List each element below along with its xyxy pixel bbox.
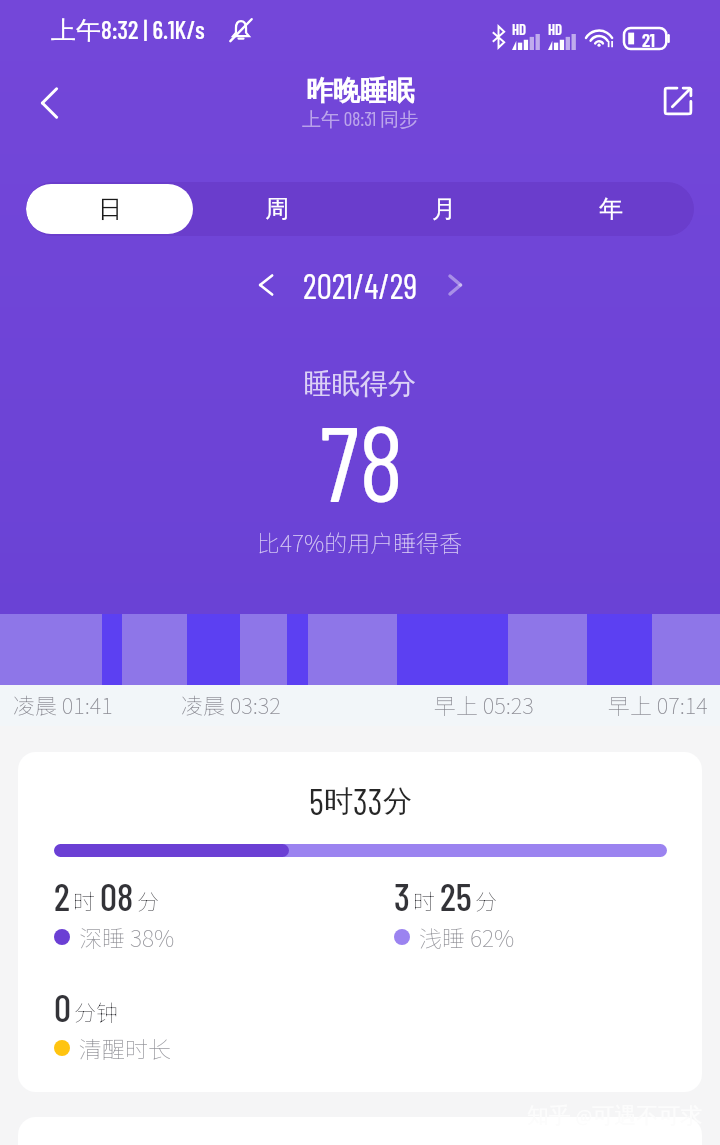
staticText: 分 <box>475 884 498 916</box>
staticText: 浅睡 62% <box>419 920 515 953</box>
staticText: 08 <box>100 873 134 919</box>
staticText: 周 <box>265 194 289 224</box>
staticText: 上午 08:31 同步 <box>302 107 418 132</box>
staticText: 凌晨 03:32 <box>181 688 281 720</box>
button[interactable]: 月 <box>360 184 527 234</box>
button[interactable]: Next day <box>432 262 478 308</box>
staticText: 78 <box>320 396 404 523</box>
staticText: HD <box>512 20 527 38</box>
staticText: 21 <box>642 28 655 49</box>
staticText: 2 <box>54 873 70 919</box>
staticText: 昨晚睡眠 <box>306 74 414 108</box>
staticText: 时 <box>324 783 353 820</box>
staticText: 上午8:32 | 6.1K/s <box>51 14 205 46</box>
staticText: 清醒时长 <box>79 1031 171 1064</box>
staticText: 年 <box>599 194 623 224</box>
staticText: 33 <box>353 779 383 822</box>
staticText: 时 <box>73 884 96 916</box>
button[interactable]: 年 <box>527 184 694 234</box>
staticText: 知乎 @可遇不可求 <box>527 1101 703 1130</box>
staticText: 分钟 <box>74 995 119 1027</box>
staticText: 日 <box>98 194 122 224</box>
staticText: 月 <box>432 194 456 224</box>
staticText: 早上 07:14 <box>608 688 708 720</box>
button[interactable]: 周 <box>193 184 360 234</box>
staticText: 分 <box>137 884 160 916</box>
staticText: HD <box>548 20 563 38</box>
staticText: 0 <box>54 984 71 1030</box>
button[interactable]: Share <box>650 73 706 129</box>
staticText: 2021/4/29 <box>303 265 418 306</box>
staticText: 凌晨 01:41 <box>13 688 113 720</box>
staticText: 3 <box>394 873 410 919</box>
staticText: 25 <box>440 873 472 919</box>
staticText: 早上 05:23 <box>434 688 534 720</box>
staticText: 比47%的用户睡得香 <box>257 525 463 558</box>
staticText: 深睡 38% <box>79 920 175 953</box>
staticText: 5 <box>309 779 324 822</box>
button[interactable]: Previous day <box>243 262 289 308</box>
button[interactable]: 5 <box>18 752 702 1092</box>
staticText: 时 <box>413 884 436 916</box>
button[interactable]: 日 <box>26 184 193 234</box>
staticText: 睡眠得分 <box>304 366 416 401</box>
button[interactable]: Back <box>16 74 74 132</box>
staticText: 分 <box>383 783 412 820</box>
